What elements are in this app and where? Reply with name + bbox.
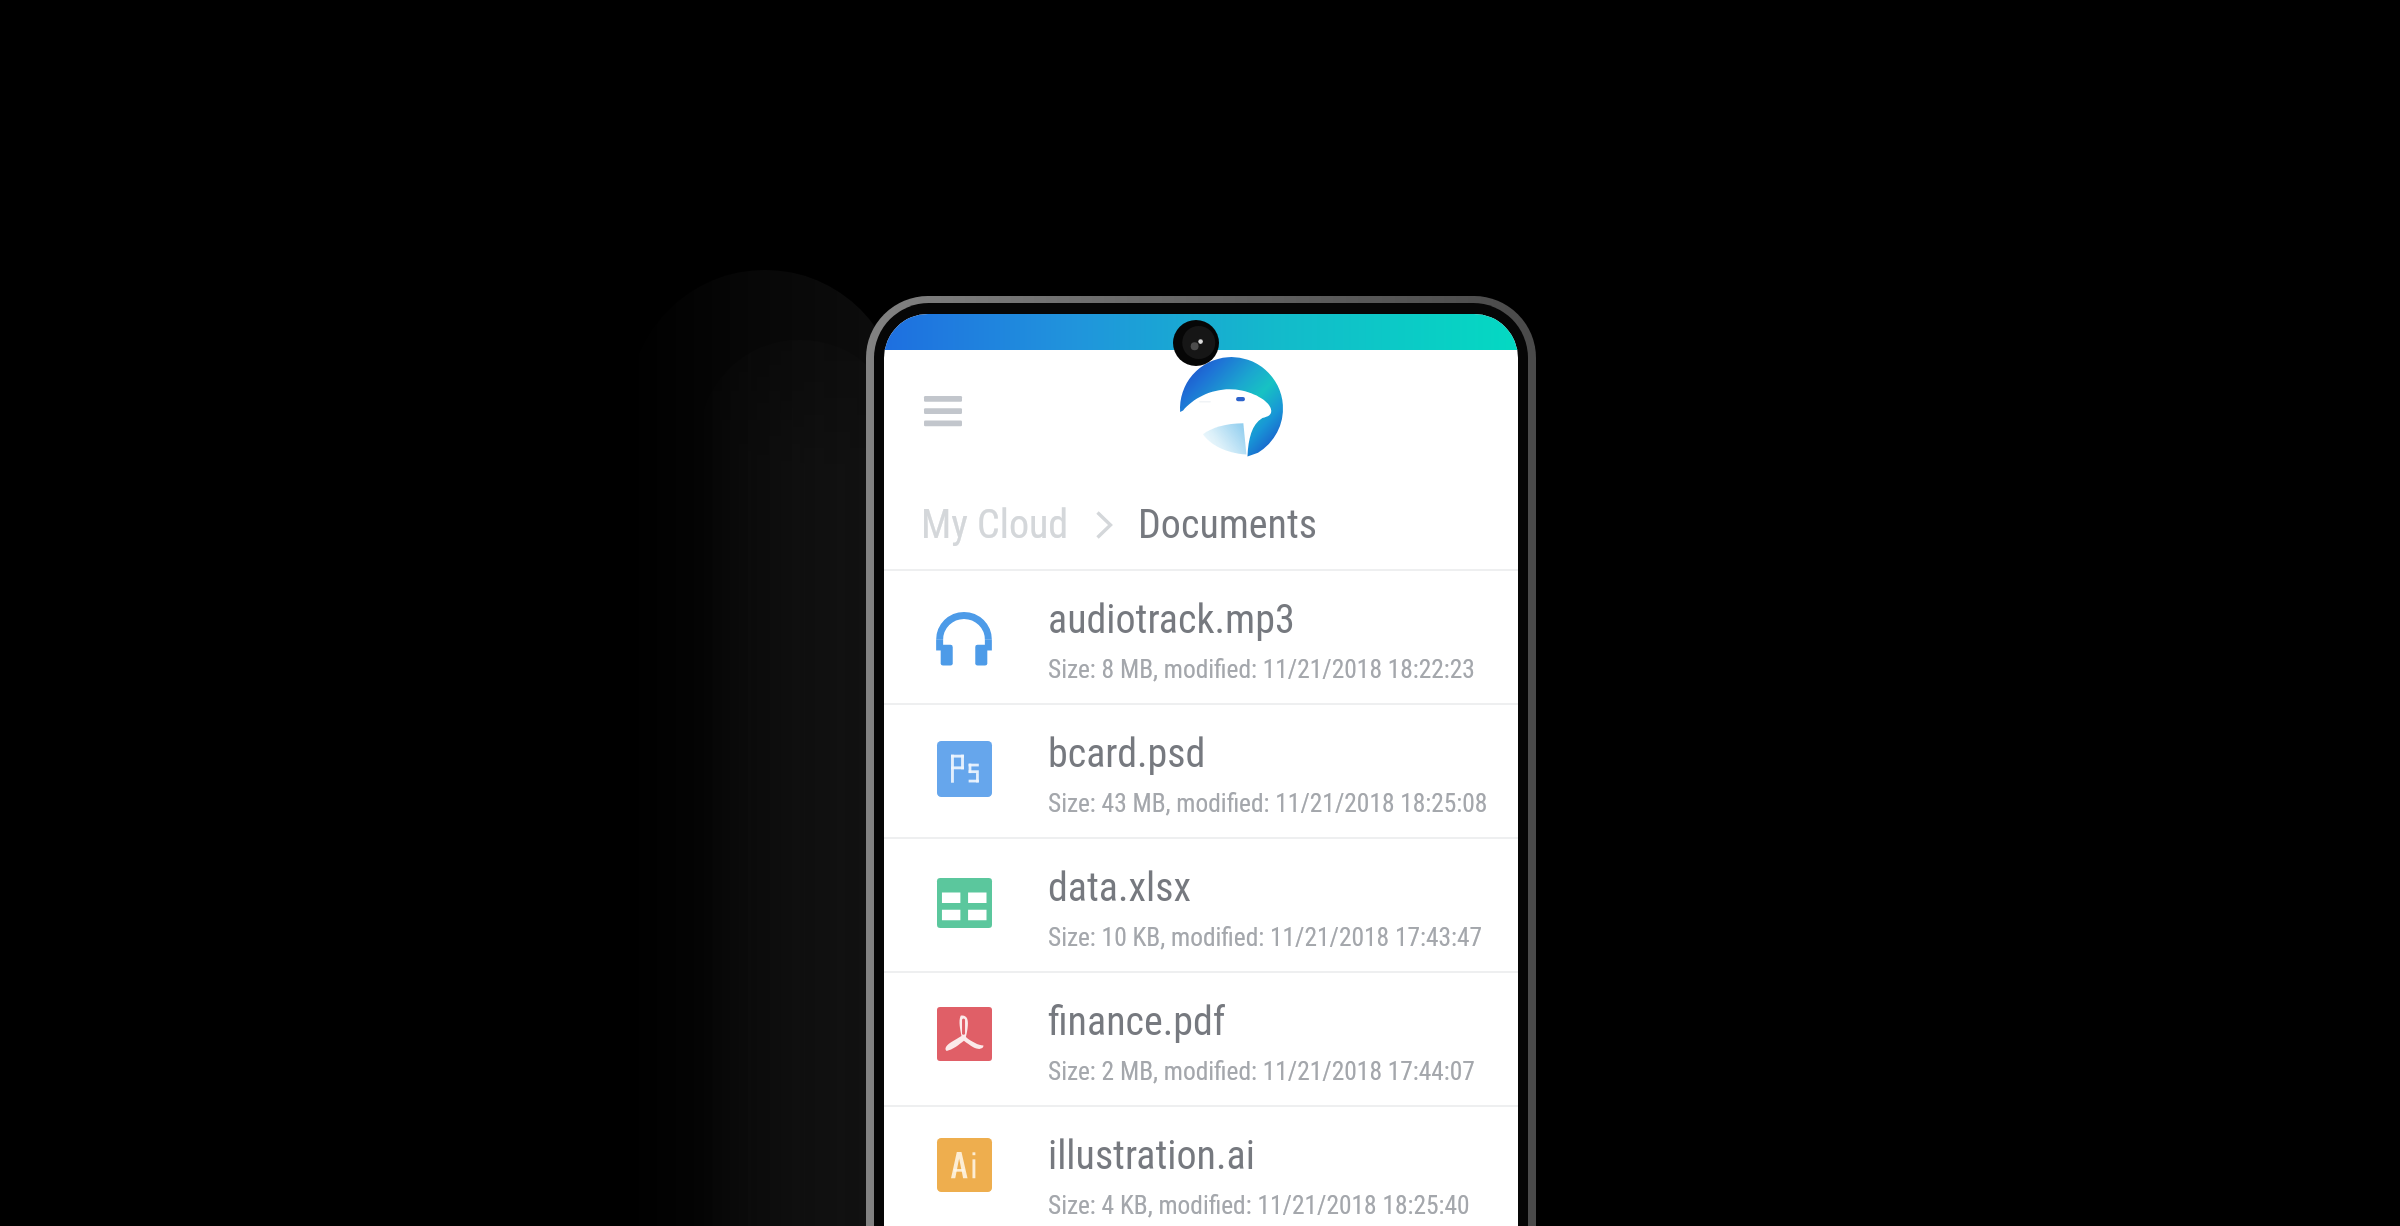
button[interactable]: data.xlsx	[884, 839, 1518, 971]
staticText: bcard.psd	[1048, 730, 1206, 777]
button[interactable]: audiotrack.mp3	[884, 571, 1518, 703]
button[interactable]: illustration.ai	[884, 1107, 1518, 1226]
staticText: illustration.ai	[1048, 1132, 1255, 1179]
button[interactable]: Open navigation menu	[924, 396, 962, 426]
staticText: Size: 4 KB, modified: 11/21/2018 18:25:4…	[1048, 1190, 1470, 1220]
staticText: Size: 8 MB, modified: 11/21/2018 18:22:2…	[1048, 654, 1475, 684]
button[interactable]: My Cloud	[921, 501, 1069, 548]
staticText: audiotrack.mp3	[1048, 596, 1295, 643]
button[interactable]: finance.pdf	[884, 973, 1518, 1105]
other: App logo	[1180, 358, 1283, 459]
staticText: Size: 2 MB, modified: 11/21/2018 17:44:0…	[1048, 1056, 1475, 1086]
button[interactable]: bcard.psd	[884, 705, 1518, 837]
button[interactable]: Documents	[1138, 501, 1318, 548]
staticText: Size: 43 MB, modified: 11/21/2018 18:25:…	[1048, 788, 1488, 818]
staticText: finance.pdf	[1048, 998, 1226, 1045]
staticText: data.xlsx	[1048, 864, 1192, 911]
staticText: Size: 10 KB, modified: 11/21/2018 17:43:…	[1048, 922, 1483, 952]
